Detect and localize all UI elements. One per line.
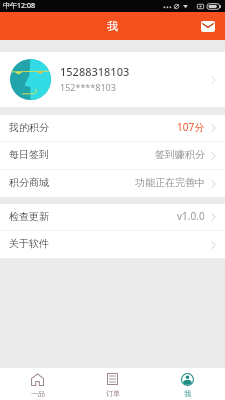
button[interactable]: 每日签到: [0, 142, 225, 169]
staticText: 15288318103: [60, 64, 130, 79]
staticText: 我: [184, 389, 191, 398]
button[interactable]: 我: [150, 368, 225, 400]
staticText: 签到赚积分: [155, 148, 205, 161]
button[interactable]: 订单: [75, 368, 150, 400]
staticText: 我的积分: [9, 121, 49, 134]
button[interactable]: Messages: [201, 21, 215, 32]
staticText: 功能正在完善中: [135, 176, 205, 189]
button[interactable]: 15288318103: [0, 52, 225, 107]
staticText: 积分商城: [9, 176, 49, 189]
staticText: 每日签到: [9, 148, 49, 161]
staticText: 关于软件: [9, 237, 49, 250]
button[interactable]: 关于软件: [0, 231, 225, 258]
button[interactable]: 检查更新: [0, 204, 225, 230]
button[interactable]: 一品: [0, 368, 75, 400]
staticText: 订单: [106, 389, 120, 398]
staticText: 检查更新: [9, 210, 49, 223]
button[interactable]: 积分商城: [0, 170, 225, 197]
staticText: 中午12:08: [3, 1, 35, 11]
staticText: 152****8103: [60, 81, 116, 93]
staticText: 一品: [31, 389, 45, 398]
staticText: 107分: [177, 120, 205, 134]
staticText: v1.0.0: [177, 209, 205, 223]
staticText: 我: [107, 19, 118, 33]
button[interactable]: 我的积分: [0, 115, 225, 141]
